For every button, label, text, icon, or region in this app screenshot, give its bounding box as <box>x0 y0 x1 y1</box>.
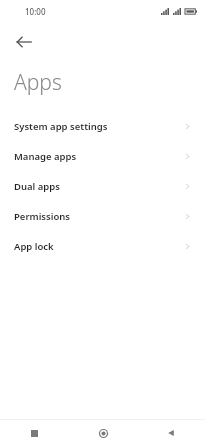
button[interactable]: Home <box>69 420 137 446</box>
staticText: Permissions <box>14 210 183 223</box>
button[interactable]: System app settings <box>0 111 205 141</box>
staticText: App lock <box>14 240 183 253</box>
button[interactable]: Manage apps <box>0 141 205 171</box>
staticText: 10:00 <box>25 6 46 17</box>
button[interactable]: Dual apps <box>0 171 205 201</box>
button[interactable]: Permissions <box>0 201 205 231</box>
button[interactable]: Recents <box>0 420 69 446</box>
staticText: Manage apps <box>14 150 183 163</box>
staticText: Apps <box>14 68 62 97</box>
button[interactable]: App lock <box>0 231 205 261</box>
staticText: System app settings <box>14 120 183 133</box>
button[interactable]: Back <box>137 420 205 446</box>
staticText: Dual apps <box>14 180 183 193</box>
button[interactable]: Back <box>8 22 40 62</box>
